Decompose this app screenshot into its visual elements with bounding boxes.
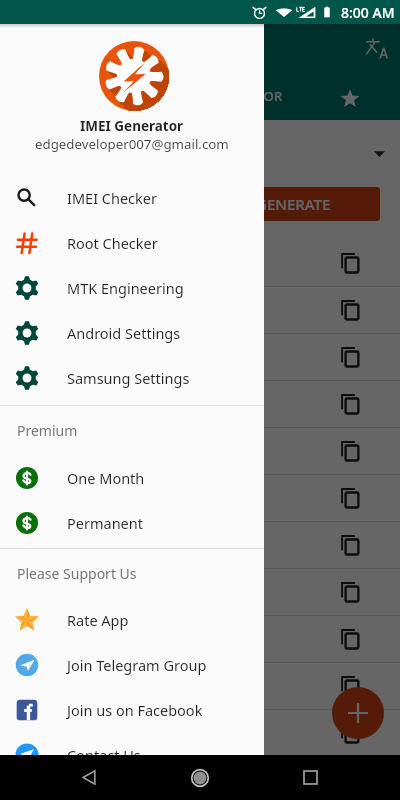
staticText: Select Brand — [18, 144, 101, 163]
button[interactable]: Join Telegram Group — [0, 642, 264, 687]
button[interactable]: IMEI Checker — [0, 175, 264, 220]
button[interactable]: Join us on Facebook — [0, 687, 264, 732]
staticText: IMEI Generator — [80, 117, 184, 135]
button[interactable]: 354721098456321 — [0, 240, 400, 286]
button[interactable]: Copy — [330, 525, 370, 565]
button[interactable]: Contact Us — [0, 732, 264, 777]
button[interactable]: 356092184573620 — [0, 710, 400, 755]
button[interactable]: MTK Engineering — [0, 265, 264, 310]
staticText: 357412098563472 — [18, 394, 147, 414]
button[interactable]: 358129045673812 — [0, 616, 400, 662]
button[interactable]: 351478926053741 — [0, 663, 400, 709]
staticText: Samsung Settings — [67, 368, 190, 388]
button[interactable]: IMEI GENERATOR — [0, 72, 299, 120]
staticText: 352066107834521 — [18, 347, 147, 367]
button[interactable]: One Month — [0, 455, 264, 500]
staticText: 356701459832106 — [18, 488, 147, 508]
button[interactable]: Copy — [330, 713, 370, 753]
button[interactable]: Add — [332, 687, 384, 739]
button[interactable]: 356701459832106 — [0, 475, 400, 521]
staticText: 8:00 AM — [341, 3, 395, 22]
button[interactable]: GENERATE — [207, 187, 380, 221]
staticText: IMEI Checker — [67, 188, 157, 208]
button[interactable]: Copy — [330, 666, 370, 706]
staticText: CLEAR — [82, 194, 128, 214]
staticText: edgedeveloper007@gmail.com — [35, 135, 229, 153]
button[interactable]: Back — [34, 755, 144, 800]
button[interactable]: Samsung Settings — [0, 355, 264, 400]
button[interactable]: Copy — [330, 290, 370, 330]
button[interactable]: Favorites — [299, 72, 400, 120]
button[interactable]: Copy — [330, 619, 370, 659]
staticText: 359214760385129 — [18, 535, 147, 555]
button[interactable]: 352066107834521 — [0, 334, 400, 380]
button[interactable]: Translate — [357, 30, 393, 66]
button[interactable]: 357412098563472 — [0, 381, 400, 427]
staticText: 358129045673812 — [18, 629, 147, 649]
button[interactable]: Rate App — [0, 597, 264, 642]
staticText: IMEI Generator — [60, 37, 185, 60]
button[interactable]: Copy — [330, 431, 370, 471]
button[interactable]: 359214760385129 — [0, 522, 400, 568]
staticText: 350673918254601 — [18, 582, 147, 602]
button[interactable]: Permanent — [0, 500, 264, 545]
staticText: One Month — [67, 468, 145, 488]
staticText: MTK Engineering — [67, 278, 184, 298]
staticText: Premium — [17, 421, 78, 440]
staticText: Join us on Facebook — [67, 700, 203, 720]
button[interactable]: Copy — [330, 572, 370, 612]
button[interactable]: CLEAR — [18, 187, 191, 221]
button[interactable]: 350673918254601 — [0, 569, 400, 615]
button[interactable]: Copy — [330, 337, 370, 377]
staticText: IMEI GENERATOR — [170, 87, 283, 105]
button[interactable]: Copy — [330, 384, 370, 424]
button[interactable]: Home — [144, 755, 255, 800]
staticText: Rate App — [67, 610, 129, 630]
button[interactable]: Root Checker — [0, 220, 264, 265]
button[interactable]: Android Settings — [0, 310, 264, 355]
button[interactable]: Copy — [330, 243, 370, 283]
button[interactable]: 351983045672190 — [0, 287, 400, 333]
staticText: Permanent — [67, 513, 143, 533]
staticText: Join Telegram Group — [67, 655, 207, 675]
button[interactable]: Recents — [255, 755, 366, 800]
staticText: GENERATE — [256, 194, 331, 214]
staticText: Android Settings — [67, 323, 181, 343]
staticText: Contact Us — [67, 745, 141, 765]
button[interactable]: Select Brand — [18, 138, 385, 168]
button[interactable]: Copy — [330, 478, 370, 518]
staticText: 354721098456321 — [18, 253, 147, 273]
staticText: Please Support Us — [17, 564, 137, 583]
staticText: Root Checker — [67, 233, 158, 253]
button[interactable]: 353890126745093 — [0, 428, 400, 474]
